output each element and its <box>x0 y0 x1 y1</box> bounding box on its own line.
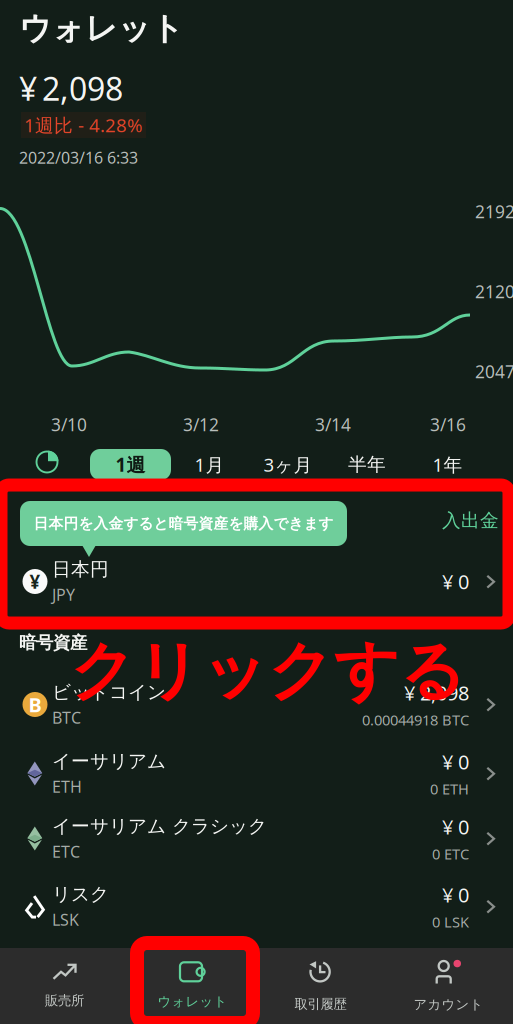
staticText: 半年 <box>348 453 386 476</box>
staticText: ¥ 0 <box>442 813 469 840</box>
button[interactable]: アカウント <box>384 948 512 1024</box>
staticText: ¥ 2,098 <box>404 679 469 706</box>
staticText: 暗号資産 <box>19 632 87 653</box>
staticText: 3/10 <box>51 413 87 436</box>
button[interactable]: リスク <box>0 873 513 940</box>
staticText: ETC <box>52 841 80 862</box>
staticText: 2022/03/16 6:33 <box>19 147 138 168</box>
staticText: ETH <box>52 776 82 797</box>
staticText: 日本円 <box>52 558 109 581</box>
staticText: リスク <box>52 883 109 906</box>
staticText: 0 ETH <box>430 779 469 798</box>
staticText: 取引履歴 <box>294 996 346 1012</box>
button[interactable]: 半年 <box>338 449 396 480</box>
staticText: 日本円を入金すると暗号資産を購入できます <box>33 514 333 532</box>
staticText: ¥ 2,098 <box>19 67 123 109</box>
staticText: ¥ 0 <box>442 748 469 775</box>
staticText: BTC <box>52 707 81 728</box>
button[interactable]: イーサリアム クラシック <box>0 805 513 872</box>
staticText: 3/14 <box>315 413 351 436</box>
button[interactable]: 販売所 <box>0 948 128 1024</box>
staticText: ¥ <box>29 569 40 594</box>
button[interactable]: ポートフォリオ <box>35 450 60 475</box>
staticText: 1週 <box>115 452 145 477</box>
button[interactable]: ウォレット <box>128 948 256 1024</box>
staticText: 3ヶ月 <box>263 452 312 477</box>
staticText: クリックする <box>70 632 466 711</box>
button[interactable]: 1月 <box>182 449 237 480</box>
button[interactable]: 入出金 <box>442 509 499 532</box>
staticText: 0 LSK <box>432 912 469 931</box>
staticText: 0.00044918 BTC <box>362 710 469 729</box>
staticText: ウォレット <box>19 9 184 48</box>
staticText: JPY <box>52 584 75 605</box>
staticText: 1週比 - 4.28% <box>24 113 143 137</box>
staticText: 3/12 <box>183 413 219 436</box>
staticText: 3/16 <box>430 413 466 436</box>
staticText: ウォレット <box>157 993 227 1010</box>
staticText: ¥ 0 <box>442 568 469 595</box>
staticText: イーサリアム <box>52 750 166 773</box>
button[interactable]: 取引履歴 <box>256 948 384 1024</box>
button[interactable]: 1週 <box>90 449 171 480</box>
staticText: 1月 <box>194 452 224 477</box>
staticText: 販売所 <box>45 992 84 1009</box>
button[interactable]: B <box>0 671 513 738</box>
button[interactable]: ¥ <box>0 548 513 615</box>
staticText: 2192 <box>475 200 513 223</box>
staticText: イーサリアム クラシック <box>52 815 267 838</box>
staticText: 入出金 <box>442 509 499 532</box>
staticText: 0 ETC <box>432 844 469 863</box>
staticText: B <box>28 691 41 718</box>
button[interactable]: 1年 <box>420 449 475 480</box>
staticText: ¥ 0 <box>442 881 469 908</box>
button[interactable]: イーサリアム <box>0 740 513 807</box>
button[interactable]: 3ヶ月 <box>254 449 322 480</box>
staticText: アカウント <box>413 996 483 1013</box>
staticText: 1年 <box>432 452 462 477</box>
staticText: LSK <box>52 909 79 930</box>
staticText: ビットコイン <box>52 681 166 704</box>
staticText: 2120 <box>475 280 513 303</box>
staticText: 2047 <box>475 360 513 383</box>
